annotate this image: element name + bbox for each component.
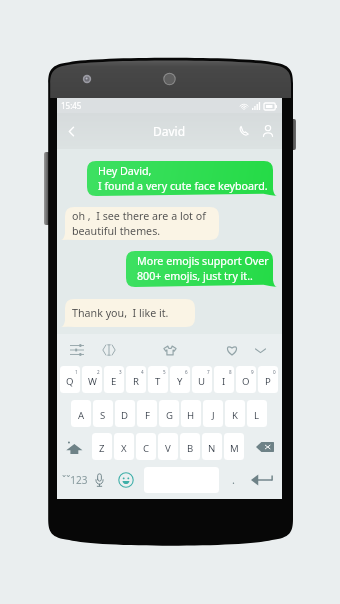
- button[interactable]: G: [159, 400, 179, 427]
- button[interactable]: Y: [170, 366, 190, 393]
- button[interactable]: Keyboard settings: [63, 336, 91, 364]
- button[interactable]: N: [202, 433, 222, 460]
- button[interactable]: D: [115, 400, 135, 427]
- staticText: L: [254, 409, 260, 422]
- button[interactable]: Contact info: [256, 119, 280, 143]
- button[interactable]: Z: [92, 433, 112, 460]
- button[interactable]: B: [180, 433, 200, 460]
- button[interactable]: K: [225, 400, 245, 427]
- button[interactable]: More emojis support Over: [126, 251, 277, 287]
- button[interactable]: Voice input: [86, 465, 112, 494]
- button[interactable]: ˇˇ123: [59, 465, 91, 494]
- staticText: oh , I see there are a lot of: [72, 209, 206, 224]
- button[interactable]: Text style: [95, 336, 123, 364]
- button[interactable]: X: [114, 433, 134, 460]
- staticText: More emojis support Over: [137, 254, 269, 269]
- button[interactable]: F: [137, 400, 157, 427]
- staticText: W: [88, 375, 97, 388]
- button[interactable]: M: [224, 433, 244, 460]
- staticText: G: [166, 409, 173, 422]
- staticText: 7: [207, 369, 210, 375]
- staticText: E: [111, 375, 117, 388]
- button[interactable]: U: [192, 366, 212, 393]
- staticText: Y: [177, 375, 183, 388]
- button[interactable]: Back: [60, 120, 82, 142]
- staticText: Z: [99, 442, 105, 455]
- button[interactable]: J: [203, 400, 223, 427]
- staticText: V: [165, 442, 171, 455]
- staticText: P: [265, 375, 271, 388]
- staticText: Q: [66, 375, 74, 388]
- staticText: 3: [119, 369, 122, 375]
- button[interactable]: Q: [60, 366, 80, 393]
- button[interactable]: O: [236, 366, 256, 393]
- button[interactable]: V: [158, 433, 178, 460]
- staticText: D: [121, 409, 129, 422]
- staticText: Thank you, I like it.: [72, 306, 169, 321]
- button[interactable]: A: [71, 400, 91, 427]
- button[interactable]: Enter: [246, 465, 278, 494]
- button[interactable]: P: [258, 366, 278, 393]
- button[interactable]: Call: [232, 119, 256, 143]
- staticText: J: [212, 409, 215, 422]
- button[interactable]: E: [104, 366, 124, 393]
- staticText: M: [230, 442, 239, 455]
- button[interactable]: Shift: [59, 432, 89, 462]
- staticText: T: [155, 375, 161, 388]
- staticText: X: [121, 442, 127, 455]
- staticText: B: [187, 442, 194, 455]
- button[interactable]: Emoji: [113, 465, 139, 494]
- button[interactable]: L: [247, 400, 267, 427]
- staticText: I found a very cute face keyboard.: [98, 179, 268, 194]
- button[interactable]: .: [221, 465, 245, 494]
- staticText: O: [242, 375, 250, 388]
- staticText: H: [187, 409, 195, 422]
- staticText: 1: [75, 369, 78, 375]
- staticText: Hey David,: [98, 164, 152, 179]
- staticText: K: [232, 409, 238, 422]
- staticText: 8: [229, 369, 232, 375]
- button[interactable]: Themes: [156, 336, 184, 364]
- button[interactable]: Thank you, I like it.: [61, 299, 195, 327]
- button[interactable]: T: [148, 366, 168, 393]
- staticText: I: [222, 375, 226, 388]
- button[interactable]: Favorites: [218, 336, 246, 364]
- button[interactable]: Backspace: [249, 433, 281, 461]
- button[interactable]: I: [214, 366, 234, 393]
- staticText: David: [153, 123, 186, 139]
- staticText: 9: [251, 369, 254, 375]
- staticText: 0: [273, 369, 276, 375]
- button[interactable]: Collapse: [246, 336, 274, 364]
- staticText: N: [208, 442, 216, 455]
- button[interactable]: H: [181, 400, 201, 427]
- staticText: .: [232, 472, 235, 487]
- button[interactable]: R: [126, 366, 146, 393]
- staticText: 6: [185, 369, 188, 375]
- staticText: R: [133, 375, 139, 388]
- staticText: beautiful themes.: [72, 224, 161, 239]
- button[interactable]: oh , I see there are a lot of: [61, 207, 219, 240]
- staticText: ˇˇ123: [62, 473, 88, 487]
- staticText: U: [198, 375, 206, 388]
- button[interactable]: C: [136, 433, 156, 460]
- staticText: 800+ emojis, just try it..: [137, 269, 253, 284]
- staticText: 4: [141, 369, 144, 375]
- staticText: 2: [97, 369, 100, 375]
- staticText: A: [78, 409, 85, 422]
- button[interactable]: W: [82, 366, 102, 393]
- staticText: S: [100, 409, 106, 422]
- staticText: 5: [163, 369, 166, 375]
- staticText: F: [145, 409, 150, 422]
- staticText: 15:45: [61, 100, 82, 111]
- staticText: C: [143, 442, 150, 455]
- button[interactable]: S: [93, 400, 113, 427]
- button[interactable]: Hey David,: [87, 161, 277, 196]
